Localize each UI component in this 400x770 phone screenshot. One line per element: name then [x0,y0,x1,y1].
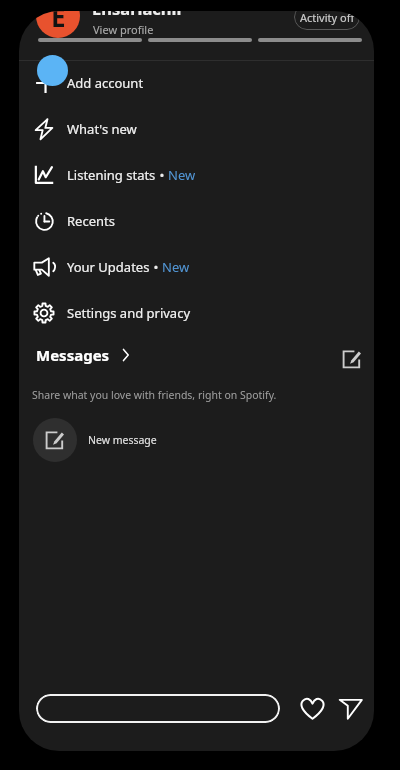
staticText: New message [88,433,157,447]
button[interactable]: Share [334,692,366,724]
staticText: What's new [67,120,137,138]
button[interactable]: New message [19,407,374,473]
staticText: Add account [67,74,144,92]
staticText: New [162,258,190,276]
staticText: Messages [36,345,110,365]
staticText: Share what you love with friends, right … [32,388,277,402]
staticText: • [156,166,168,184]
staticText: View profile [93,22,154,37]
button[interactable]: Profile [36,11,80,38]
button[interactable]: Add account [19,60,374,106]
staticText: Activity off [300,11,355,25]
button[interactable]: Search [36,694,280,723]
button[interactable]: Messages [36,345,133,365]
button[interactable]: Your Updates [19,244,374,290]
button[interactable]: Activity off [294,11,360,30]
staticText: Ensarlachir [92,11,184,19]
staticText: Recents [67,212,115,230]
staticText: Settings and privacy [67,304,191,322]
staticText: Your Updates [67,258,150,276]
staticText: E [51,11,66,34]
button[interactable]: Likes [296,692,328,724]
staticText: • [150,258,162,276]
staticText: New [168,166,196,184]
button[interactable]: New message [339,346,365,372]
button[interactable]: Listening stats [19,152,374,198]
button[interactable]: View profile [93,22,154,37]
button[interactable]: Settings and privacy [19,290,374,336]
button[interactable]: What's new [19,106,374,152]
button[interactable]: Recents [19,198,374,244]
staticText: Listening stats [67,166,156,184]
